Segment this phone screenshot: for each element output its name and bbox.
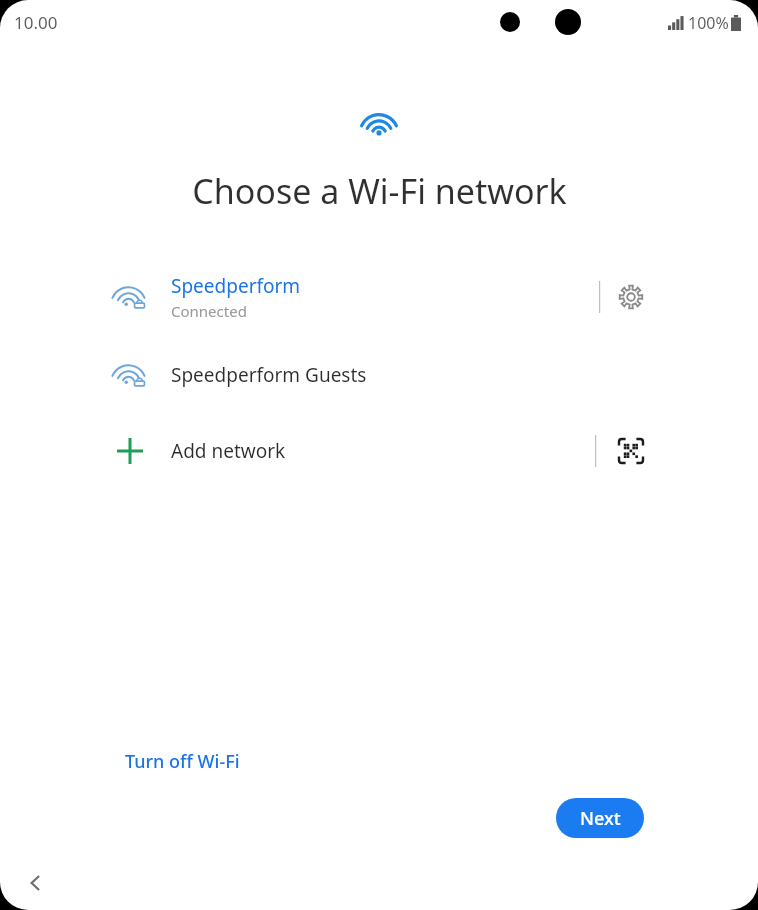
button[interactable]: Turn off Wi-Fi	[123, 745, 242, 778]
button[interactable]: Scan QR code	[610, 430, 652, 472]
button[interactable]: Speedperform Guests	[0, 344, 758, 406]
staticText: Choose a Wi-Fi network	[192, 168, 567, 214]
staticText: Connected	[171, 301, 247, 321]
button[interactable]: Add network	[0, 420, 758, 482]
staticText: Next	[580, 806, 621, 831]
staticText: 10.00	[14, 11, 58, 34]
staticText: Speedperform	[171, 273, 301, 299]
staticText: Add network	[171, 438, 286, 464]
staticText: Turn off Wi-Fi	[125, 749, 240, 774]
staticText: 100%	[688, 12, 729, 34]
button[interactable]: Network settings	[610, 276, 652, 318]
staticText: Speedperform Guests	[171, 362, 367, 388]
button[interactable]: Back	[14, 861, 58, 905]
button[interactable]: Speedperform	[0, 266, 758, 328]
button[interactable]: Next	[556, 798, 644, 838]
